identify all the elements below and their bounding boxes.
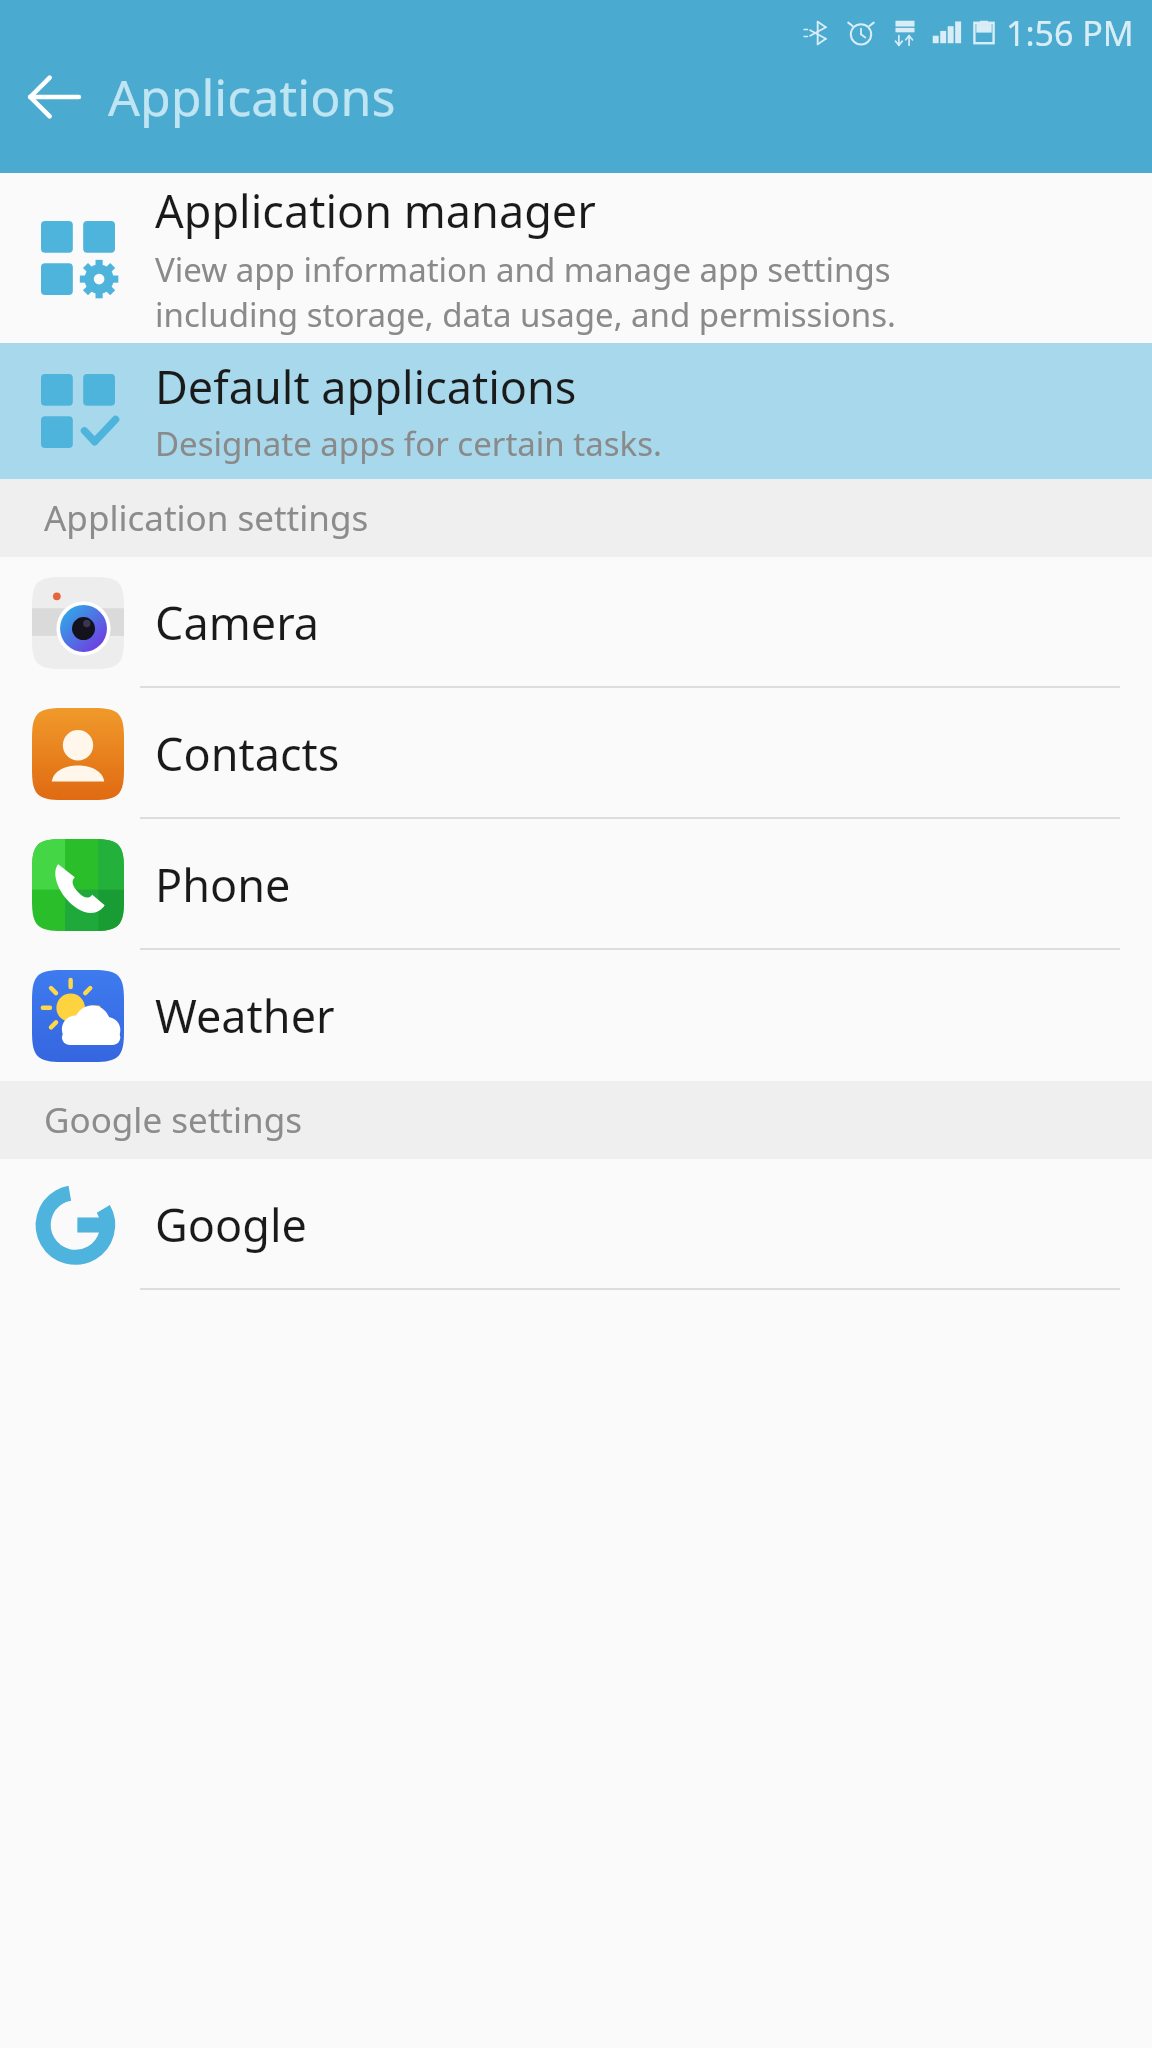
staticText: Phone bbox=[155, 854, 291, 915]
button[interactable]: Weather bbox=[0, 950, 1152, 1081]
button[interactable]: Contacts bbox=[0, 688, 1152, 819]
staticText: Camera bbox=[155, 592, 320, 653]
staticText: View app information and manage app sett… bbox=[155, 247, 896, 336]
button[interactable]: Google bbox=[0, 1159, 1152, 1290]
button[interactable]: Default applications bbox=[0, 343, 1152, 479]
button[interactable]: Back bbox=[0, 43, 108, 151]
staticText: Default applications bbox=[155, 356, 577, 417]
staticText: Applications bbox=[108, 63, 396, 131]
staticText: 1:56 PM bbox=[1006, 10, 1134, 56]
staticText: Google bbox=[155, 1194, 307, 1255]
staticText: Application manager bbox=[155, 180, 596, 241]
button[interactable]: Phone bbox=[0, 819, 1152, 950]
button[interactable]: Camera bbox=[0, 557, 1152, 688]
button[interactable]: Application manager bbox=[0, 173, 1152, 343]
staticText: Weather bbox=[155, 985, 335, 1046]
staticText: Contacts bbox=[155, 723, 340, 784]
staticText: Application settings bbox=[44, 494, 369, 542]
staticText: Designate apps for certain tasks. bbox=[155, 421, 662, 466]
staticText: Google settings bbox=[44, 1096, 302, 1144]
